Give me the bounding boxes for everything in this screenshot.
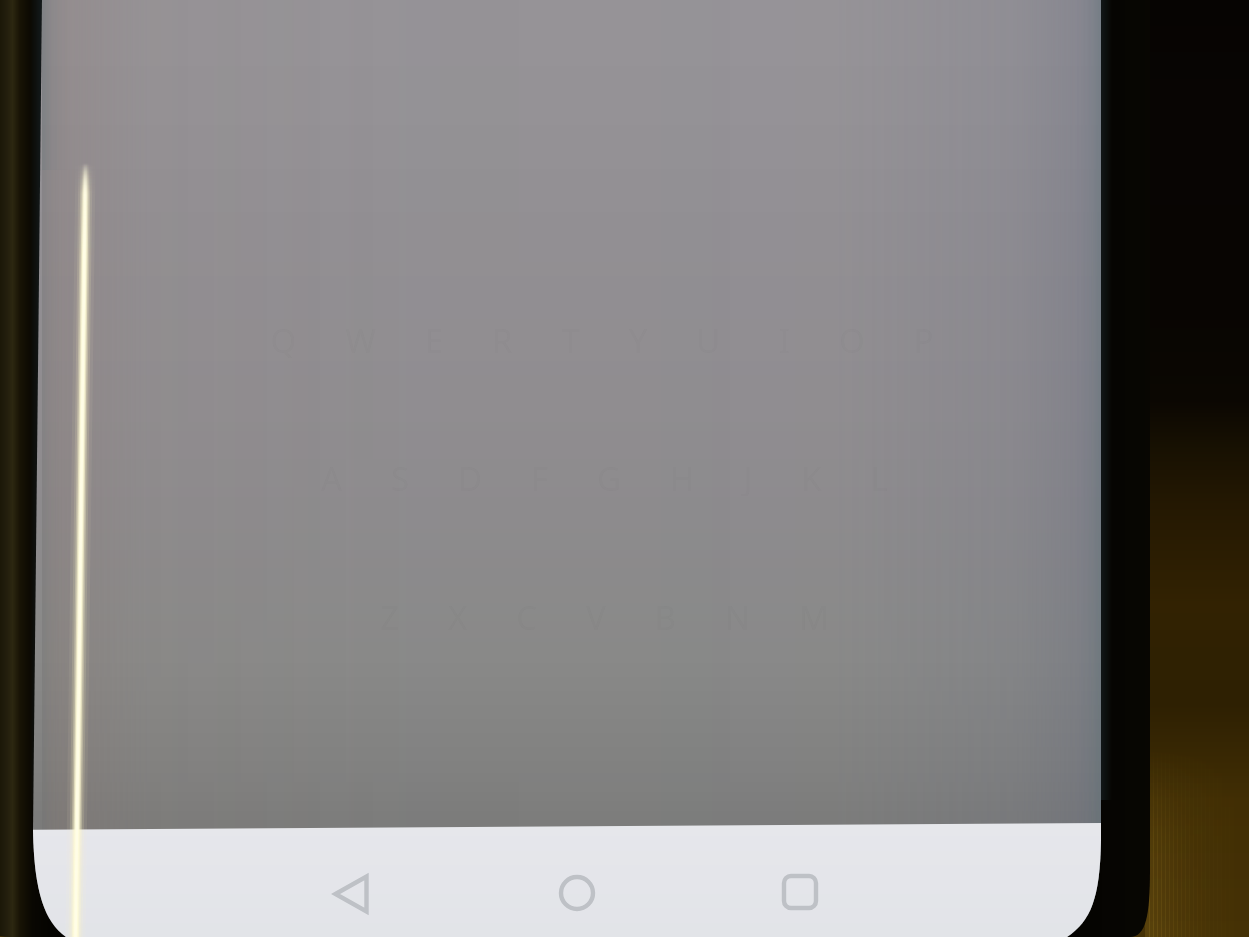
button[interactable]: Recent apps: [748, 855, 853, 937]
button[interactable]: Home: [525, 855, 630, 937]
button[interactable]: Back: [300, 855, 405, 937]
